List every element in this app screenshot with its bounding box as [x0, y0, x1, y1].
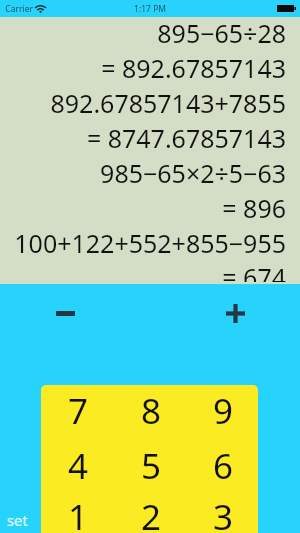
staticText: 2: [140, 493, 161, 531]
staticText: 7: [67, 387, 88, 435]
button[interactable]: 2: [114, 493, 186, 531]
staticText: = 674: [222, 260, 286, 282]
button[interactable]: 6: [186, 438, 258, 493]
button[interactable]: 9: [186, 385, 258, 438]
button[interactable]: 7: [41, 385, 114, 438]
button[interactable]: 5: [114, 438, 186, 493]
staticText: = 8747.67857143: [86, 121, 286, 155]
staticText: 6: [212, 442, 233, 490]
staticText: 5: [140, 442, 161, 490]
staticText: 4: [67, 442, 88, 490]
staticText: 8: [140, 387, 161, 435]
button[interactable]: 3: [186, 493, 258, 531]
button[interactable]: Subtract: [20, 291, 110, 336]
button[interactable]: 1: [41, 493, 114, 531]
staticText: set: [6, 510, 28, 530]
staticText: 3: [212, 493, 233, 531]
staticText: = 892.67857143: [101, 51, 286, 85]
button[interactable]: 4: [41, 438, 114, 493]
staticText: 892.67857143+7855: [50, 86, 286, 120]
button[interactable]: set: [6, 510, 28, 530]
staticText: 1:17 PM: [134, 3, 166, 15]
staticText: 9: [212, 387, 233, 435]
staticText: 985−65×2÷5−63: [100, 156, 286, 190]
staticText: = 896: [222, 191, 286, 225]
staticText: Carrier: [5, 3, 33, 15]
button[interactable]: 8: [114, 385, 186, 438]
staticText: 100+122+552+855−955: [14, 226, 286, 260]
staticText: 1: [67, 493, 88, 531]
button[interactable]: Add: [190, 291, 280, 336]
staticText: 895−65÷28: [157, 16, 286, 50]
